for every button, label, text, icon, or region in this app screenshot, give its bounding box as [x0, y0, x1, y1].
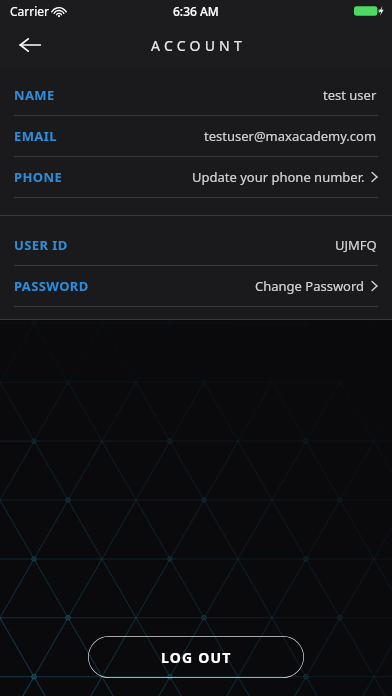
button[interactable]: PASSWORD — [0, 266, 392, 306]
staticText: test user — [323, 86, 377, 104]
staticText: UJMFQ — [335, 236, 377, 254]
staticText: USER ID — [14, 236, 68, 254]
staticText: ACCOUNT — [151, 36, 246, 55]
button[interactable]: Back — [8, 23, 52, 67]
button[interactable]: LOG OUT — [88, 636, 304, 678]
button[interactable]: NAME — [0, 75, 392, 115]
staticText: LOG OUT — [161, 648, 232, 667]
staticText: 6:36 AM — [173, 3, 219, 19]
staticText: testuser@maxacademy.com — [204, 127, 377, 145]
button[interactable]: PHONE — [0, 157, 392, 197]
staticText: Change Password — [255, 277, 365, 295]
button[interactable]: EMAIL — [0, 116, 392, 156]
staticText: NAME — [14, 86, 55, 104]
staticText: PHONE — [14, 168, 63, 186]
button[interactable]: USER ID — [0, 225, 392, 265]
staticText: PASSWORD — [14, 277, 89, 295]
staticText: EMAIL — [14, 127, 57, 145]
staticText: Carrier — [10, 3, 50, 19]
staticText: Update your phone number. — [192, 168, 365, 186]
